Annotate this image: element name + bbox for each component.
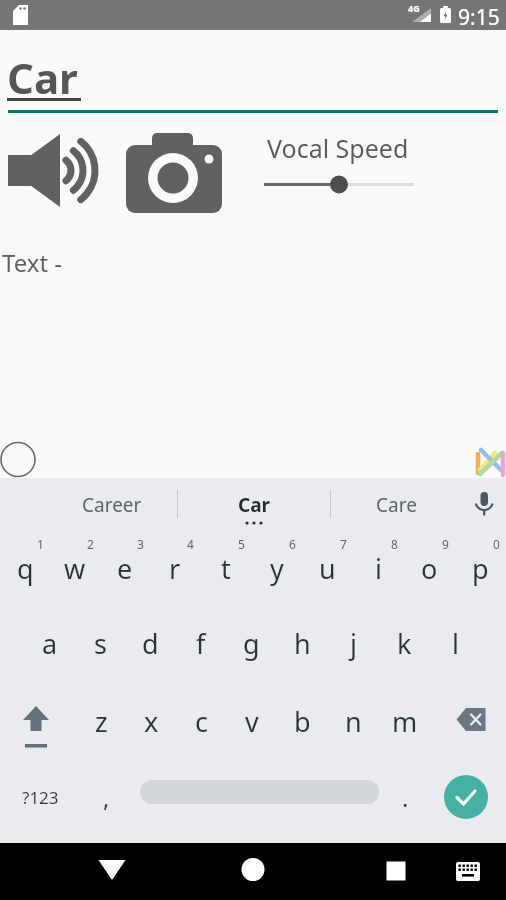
staticText: e [117,550,133,587]
button[interactable]: 8 [353,531,404,605]
staticText: q [17,550,34,587]
staticText: j [350,625,357,662]
staticText: Text - [2,246,63,279]
staticText: m [392,703,418,740]
button[interactable]: 9 [404,531,455,605]
button[interactable]: x [126,684,176,758]
button[interactable]: 0 [455,531,506,605]
button[interactable]: Care [331,488,461,522]
staticText: 4 [187,536,194,552]
button[interactable]: , [82,760,130,834]
staticText: y [270,550,284,587]
button[interactable]: h [277,606,328,680]
staticText: 3 [137,536,144,552]
staticText: . [402,781,409,814]
button[interactable] [368,843,424,900]
button[interactable]: Career [40,488,184,522]
staticText: 5 [238,536,245,552]
button[interactable]: m [379,684,430,758]
button[interactable] [430,684,506,758]
staticText: r [169,550,181,587]
button[interactable]: k [379,606,430,680]
staticText: 0 [493,536,500,552]
button[interactable] [468,487,500,523]
button[interactable]: b [277,684,328,758]
button[interactable]: 5 [200,531,251,605]
button[interactable] [0,684,76,758]
button[interactable]: 2 [50,531,100,605]
button[interactable]: n [328,684,379,758]
button[interactable]: v [226,684,277,758]
staticText: Care [376,492,417,518]
staticText: , [103,781,110,814]
button[interactable] [225,843,281,900]
button[interactable]: l [430,606,481,680]
staticText: z [95,703,108,740]
staticText: 8 [391,536,398,552]
button[interactable]: f [175,606,226,680]
staticText: c [195,703,208,740]
staticText: w [64,550,86,587]
button[interactable] [444,775,488,819]
button[interactable]: j [328,606,379,680]
staticText: Car [238,492,271,518]
button[interactable]: 4 [150,531,200,605]
button[interactable] [0,125,112,217]
button[interactable]: a [25,606,75,680]
staticText: 9:15 [458,3,500,32]
staticText: u [319,550,336,587]
staticText: 6 [289,536,296,552]
staticText: p [472,550,489,587]
staticText: b [294,703,311,740]
button[interactable] [84,843,140,900]
staticText: v [245,703,259,740]
staticText: ?123 [22,786,59,809]
button[interactable] [440,843,496,900]
button[interactable]: g [226,606,277,680]
staticText: Vocal Speed [267,131,409,165]
button[interactable] [140,780,379,804]
staticText: a [42,625,58,662]
staticText: x [144,703,159,740]
button[interactable]: . [382,760,428,834]
button[interactable]: Car [178,488,330,522]
staticText: 9 [442,536,449,552]
button[interactable] [115,125,230,217]
staticText: o [421,550,438,587]
staticText: n [345,703,362,740]
button[interactable]: 6 [251,531,302,605]
button[interactable]: s [75,606,125,680]
button[interactable]: c [176,684,226,758]
staticText: g [243,625,260,662]
button[interactable]: z [76,684,126,758]
staticText: Career [82,492,142,518]
staticText: l [452,625,459,662]
button[interactable]: d [125,606,175,680]
staticText: 4G [408,2,420,14]
staticText: 7 [340,536,347,552]
staticText: 2 [87,536,94,552]
staticText: s [94,625,107,662]
staticText: d [142,625,159,662]
button[interactable]: 1 [0,531,50,605]
staticText: 1 [37,536,44,552]
staticText: Car [7,49,78,106]
staticText: i [375,550,382,587]
button[interactable]: ?123 [0,760,80,834]
button[interactable]: 7 [302,531,353,605]
staticText: f [196,625,206,662]
button[interactable]: 3 [100,531,150,605]
staticText: k [397,625,412,662]
staticText: h [294,625,311,662]
staticText: t [221,550,231,587]
